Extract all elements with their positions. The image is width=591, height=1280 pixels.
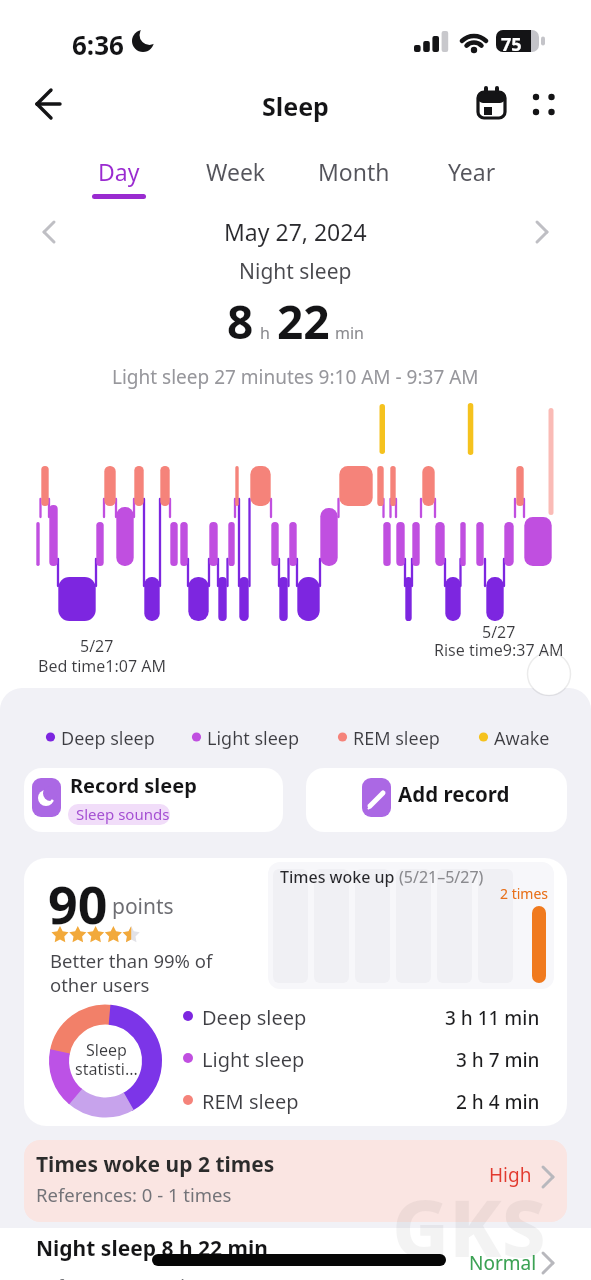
staticText: Add record [398,780,510,808]
staticText: Light sleep 27 minutes 9:10 AM - 9:37 AM [112,364,479,390]
staticText: May 27, 2024 [224,216,367,247]
staticText: 90 [48,868,108,939]
staticText: points [112,892,174,921]
staticText: Night sleep 8 h 22 min [36,1234,268,1263]
button[interactable] [528,653,570,695]
staticText: 75 [501,32,522,57]
staticText: REM sleep [202,1088,299,1115]
staticText: statisti... [75,1058,138,1080]
staticText: Year [448,156,496,187]
staticText: Light sleep [202,1046,305,1073]
staticText: 3 h 11 min [445,1005,540,1031]
staticText: Deep sleep [61,726,155,751]
staticText: Times woke up [280,866,399,888]
staticText: 22 [277,290,330,353]
staticText: h [260,322,270,344]
button[interactable] [526,212,562,252]
staticText: Deep sleep [202,1004,307,1031]
staticText: 3 h 7 min [456,1047,540,1073]
staticText: GKS [392,1174,546,1280]
staticText: Bed time1:07 AM [38,655,166,677]
button[interactable] [79,148,159,200]
staticText: Record sleep [70,772,197,799]
staticText: Sleep [86,1039,127,1061]
staticText: 8 [227,290,254,353]
button[interactable] [24,1228,567,1280]
staticText: High [489,1162,532,1188]
staticText: Rise time9:37 AM [434,639,564,661]
staticText: 6:36 [72,27,124,62]
staticText: Normal [469,1250,537,1276]
button[interactable] [306,768,567,832]
staticText: (5/21–5/27) [399,866,484,888]
button[interactable] [28,84,72,124]
staticText: 5/27 [80,635,114,657]
button[interactable] [24,858,567,1126]
staticText: References: 8-10 h [36,1274,192,1280]
button[interactable] [24,768,283,832]
staticText: 5/27 [482,621,516,643]
staticText: Light sleep [207,726,300,751]
staticText: 2 times [500,884,549,903]
staticText: 2 h 4 min [456,1089,540,1115]
staticText: Month [318,156,390,187]
staticText: Sleep [262,89,329,123]
staticText: Night sleep [239,257,352,286]
staticText: Sleep sounds [76,804,170,824]
button[interactable] [314,148,394,200]
staticText: Day [98,156,140,187]
button[interactable] [196,148,276,200]
staticText: Times woke up 2 times [36,1150,275,1179]
staticText: Awake [494,726,550,751]
button[interactable] [470,84,514,124]
button[interactable] [432,148,512,200]
staticText: References: 0 - 1 times [36,1182,232,1207]
button[interactable] [524,84,568,124]
staticText: Week [206,156,266,187]
staticText: other users [50,972,150,997]
button[interactable] [30,212,66,252]
staticText: REM sleep [353,726,440,751]
button[interactable] [24,1140,567,1222]
staticText: min [335,322,364,344]
staticText: Better than 99% of [50,948,213,973]
